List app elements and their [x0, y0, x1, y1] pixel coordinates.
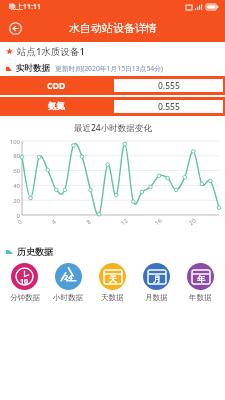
- button[interactable]: 氨氮: [0, 97, 225, 116]
- staticText: 实时数据: [16, 63, 50, 74]
- staticText: 0.555: [158, 80, 180, 92]
- staticText: 0: [0, 212, 20, 220]
- staticText: 60: [0, 167, 20, 175]
- staticText: 0.555: [158, 101, 180, 113]
- button[interactable]: 10: [3, 261, 46, 304]
- staticText: 40: [0, 182, 20, 190]
- staticText: 历史数据: [17, 246, 53, 257]
- staticText: 10: [20, 277, 29, 287]
- staticText: 0: [16, 218, 24, 226]
- staticText: 24: [64, 272, 73, 282]
- button[interactable]: 月: [134, 261, 178, 304]
- staticText: 氨氮: [48, 101, 65, 112]
- staticText: 天: [109, 274, 117, 284]
- staticText: 4: [50, 218, 58, 226]
- button[interactable]: 天: [90, 261, 134, 304]
- staticText: 最近24小时数据变化: [74, 122, 152, 134]
- staticText: 更新时间(2020年1月15日13点54分): [55, 64, 164, 73]
- staticText: 小时数据: [53, 293, 83, 302]
- staticText: 水自动站设备详情: [69, 21, 157, 35]
- staticText: 年数据: [189, 293, 212, 302]
- staticText: 月数据: [145, 293, 168, 302]
- staticText: 天数据: [101, 293, 124, 302]
- staticText: 16: [153, 217, 164, 227]
- staticText: 100: [0, 138, 20, 146]
- button[interactable]: 年: [178, 261, 222, 304]
- staticText: 20: [187, 217, 198, 227]
- staticText: 月: [153, 274, 161, 284]
- staticText: 8: [85, 218, 93, 226]
- staticText: 站点1水质设备1: [17, 45, 85, 58]
- staticText: 80: [0, 152, 20, 160]
- staticText: 年: [197, 274, 205, 284]
- staticText: COD: [47, 80, 66, 92]
- staticText: 晚上11:11: [9, 2, 41, 12]
- staticText: 20: [0, 197, 20, 205]
- staticText: 分钟数据: [10, 293, 40, 302]
- button[interactable]: Back: [4, 17, 26, 39]
- button[interactable]: COD: [0, 76, 225, 95]
- button[interactable]: 24: [46, 261, 90, 304]
- staticText: 12: [119, 217, 130, 227]
